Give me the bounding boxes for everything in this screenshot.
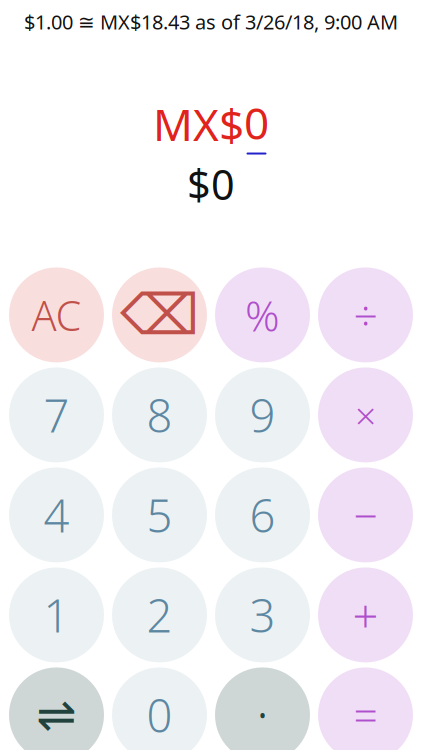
button[interactable]: Swap currencies xyxy=(9,667,104,750)
staticText: − xyxy=(353,487,377,543)
button[interactable]: Minus xyxy=(318,467,413,562)
button[interactable]: Equals xyxy=(318,667,413,750)
staticText: ⇌ xyxy=(36,688,76,742)
button[interactable]: 9 xyxy=(215,367,310,462)
staticText: • xyxy=(257,697,267,733)
staticText: 4 xyxy=(43,485,69,545)
button[interactable]: % xyxy=(215,267,310,362)
staticText: 5 xyxy=(146,485,172,545)
staticText: 9 xyxy=(249,385,275,445)
staticText: MX$ xyxy=(153,95,244,153)
button[interactable]: Multiply xyxy=(318,367,413,462)
staticText: AC xyxy=(31,287,81,342)
button[interactable]: 0 xyxy=(112,667,207,750)
staticText: ⌫ xyxy=(120,283,199,347)
button[interactable]: 5 xyxy=(112,467,207,562)
button[interactable]: 2 xyxy=(112,567,207,662)
button[interactable]: AC xyxy=(9,267,104,362)
staticText: 0 xyxy=(146,685,172,745)
staticText: 3 xyxy=(249,585,275,645)
staticText: ÷ xyxy=(353,287,377,343)
staticText: = xyxy=(353,687,377,743)
staticText: 7 xyxy=(43,385,69,445)
button[interactable]: Divide xyxy=(318,267,413,362)
button[interactable]: 3 xyxy=(215,567,310,662)
staticText: + xyxy=(352,585,378,645)
staticText: 1 xyxy=(43,585,69,645)
staticText: 0 xyxy=(244,93,269,151)
button[interactable]: Plus xyxy=(318,567,413,662)
button[interactable]: 8 xyxy=(112,367,207,462)
staticText: 8 xyxy=(146,385,172,445)
staticText: 2 xyxy=(146,585,172,645)
button[interactable]: 1 xyxy=(9,567,104,662)
staticText: $1.00 ≅ MX$18.43 as of 3/26/18, 9:00 AM xyxy=(24,9,398,35)
staticText: $0 xyxy=(187,157,235,211)
staticText: 6 xyxy=(249,485,275,545)
button[interactable]: Delete xyxy=(112,267,207,362)
button[interactable]: Decimal point xyxy=(215,667,310,750)
staticText: % xyxy=(245,287,280,343)
button[interactable]: 6 xyxy=(215,467,310,562)
button[interactable]: 4 xyxy=(9,467,104,562)
staticText: × xyxy=(355,390,376,440)
button[interactable]: 7 xyxy=(9,367,104,462)
